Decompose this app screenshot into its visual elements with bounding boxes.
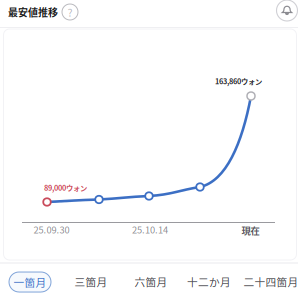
button[interactable]: 三箇月 — [69, 271, 113, 291]
button[interactable]: 六箇月 — [129, 271, 173, 291]
staticText: 163,860ウォン — [215, 76, 262, 86]
button[interactable]: 一箇月 — [9, 272, 51, 292]
button[interactable]: Notifications — [276, 0, 297, 21]
staticText: 二十四箇月 — [243, 274, 298, 289]
staticText: 25.09.30 — [33, 223, 69, 236]
staticText: ? — [67, 4, 72, 20]
staticText: 最安値推移 — [8, 5, 58, 19]
staticText: 一箇月 — [13, 274, 46, 290]
staticText: 三箇月 — [74, 274, 107, 289]
staticText: 六箇月 — [134, 274, 167, 289]
staticText: 25.10.14 — [132, 223, 168, 236]
staticText: 89,000ウォン — [44, 182, 87, 193]
staticText: 十二か月 — [187, 274, 231, 289]
button[interactable]: 十二か月 — [183, 271, 235, 291]
button[interactable]: Help — [62, 4, 78, 20]
staticText: 現在 — [241, 224, 259, 237]
button[interactable]: 二十四箇月 — [240, 271, 298, 291]
